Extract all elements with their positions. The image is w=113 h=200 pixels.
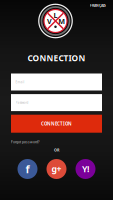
staticText: L [53, 10, 57, 20]
staticText: Email [15, 80, 24, 84]
staticText: g+ [51, 163, 61, 175]
staticText: V [47, 16, 52, 26]
button[interactable]: FRANÇAIS [85, 0, 111, 10]
button[interactable]: Sign in with Facebook [17, 159, 37, 179]
staticText: Password [15, 101, 28, 105]
button[interactable]: Sign in with Google Plus [46, 159, 66, 179]
button[interactable]: Sign in with Yahoo [75, 159, 95, 179]
staticText: M [58, 16, 65, 26]
staticText: Forgot password? [11, 140, 39, 144]
button[interactable]: Forgot password? [11, 138, 102, 146]
button[interactable]: CONNECTION [11, 115, 102, 133]
staticText: Y! [82, 163, 89, 175]
button[interactable]: Password [11, 94, 102, 111]
staticText: OR [54, 147, 59, 153]
staticText: CONNECTION [27, 52, 85, 64]
staticText: f [25, 162, 29, 176]
staticText: CONNECTION [41, 121, 72, 127]
staticText: FRANÇAIS [90, 3, 106, 8]
